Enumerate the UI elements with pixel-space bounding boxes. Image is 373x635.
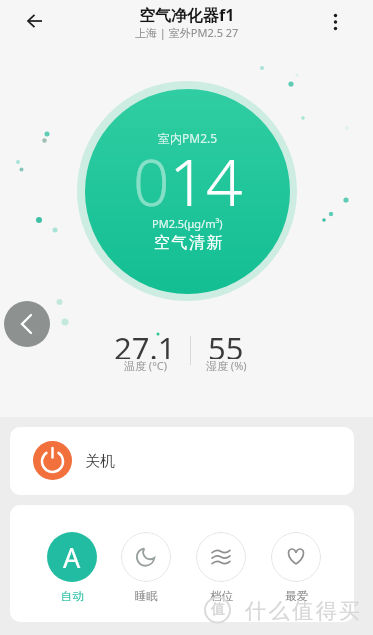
staticText: 空气清新 — [153, 233, 223, 253]
button[interactable] — [14, 6, 56, 38]
button[interactable] — [196, 532, 246, 582]
staticText: 空气净化器f1 — [139, 4, 235, 24]
staticText: 上海 | 室外PM2.5 27 — [135, 25, 239, 40]
staticText: 温度 (°C) — [124, 358, 168, 372]
staticText: 自动 — [61, 589, 84, 603]
staticText: 关机 — [85, 452, 115, 471]
button[interactable]: 关机 — [10, 427, 354, 495]
staticText: 湿度 (%) — [206, 358, 247, 372]
staticText: 值 — [211, 601, 225, 619]
staticText: A — [63, 539, 81, 576]
staticText: 最爱 — [285, 589, 308, 603]
button[interactable] — [4, 301, 50, 347]
staticText: PM2.5(μg/m³) — [152, 216, 223, 231]
button[interactable] — [320, 6, 352, 38]
button[interactable]: A — [47, 532, 97, 582]
staticText: 014 — [133, 138, 243, 218]
staticText: 55 — [208, 327, 244, 359]
staticText: 室内PM2.5 — [158, 130, 218, 146]
staticText: 27.1 — [114, 327, 176, 359]
staticText: 什么值得买 — [245, 598, 363, 624]
staticText: 档位 — [210, 589, 233, 603]
button[interactable] — [271, 532, 321, 582]
staticText: 睡眠 — [135, 589, 158, 603]
button[interactable]: 室内PM2.5 — [85, 89, 290, 294]
button[interactable] — [121, 532, 171, 582]
